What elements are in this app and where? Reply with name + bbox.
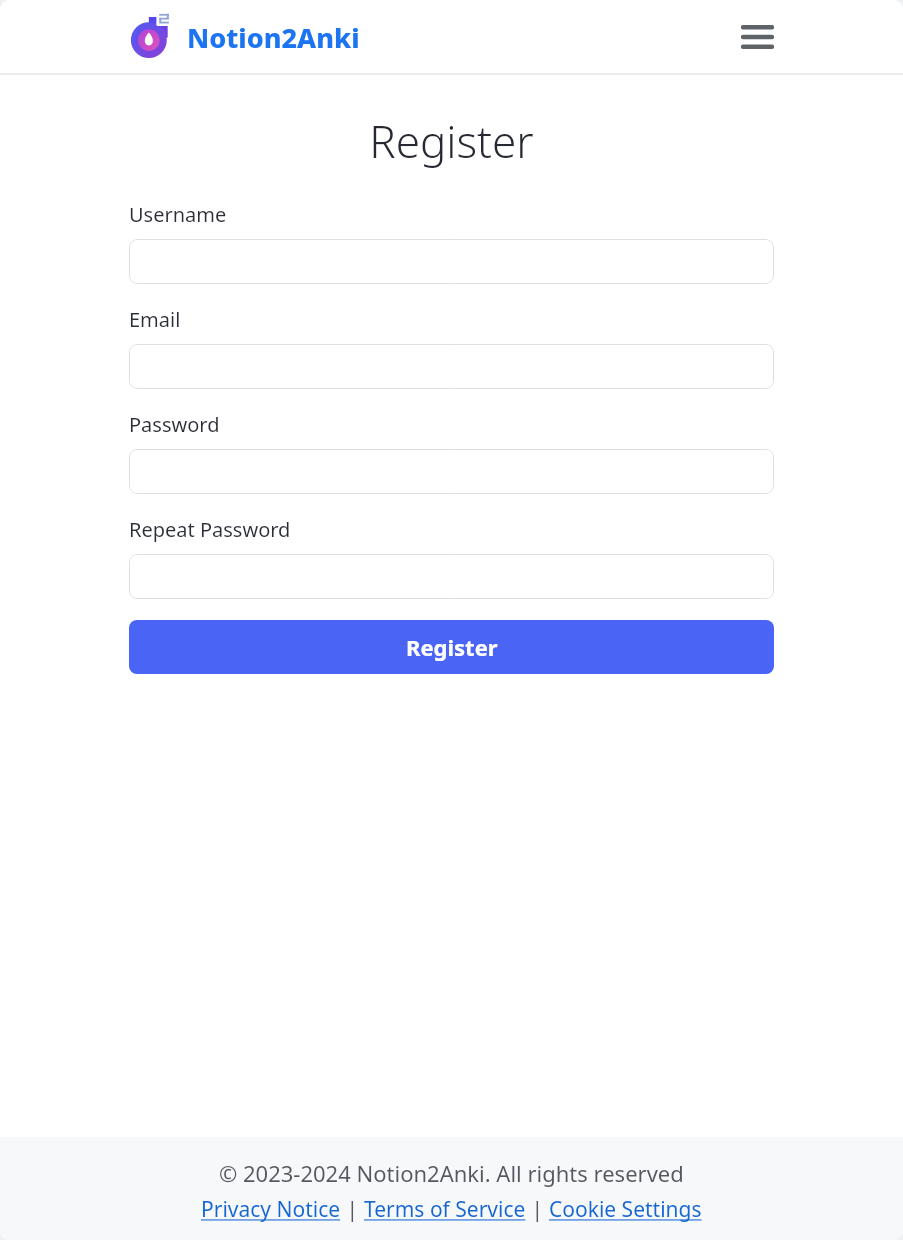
staticText: Cookie Settings xyxy=(549,1195,702,1224)
button[interactable]: Register xyxy=(129,620,774,674)
button[interactable]: Notion2Anki xyxy=(127,11,360,63)
button[interactable]: Terms of Service xyxy=(364,1195,526,1224)
button[interactable]: Cookie Settings xyxy=(549,1195,702,1224)
staticText: Notion2Anki xyxy=(187,19,360,56)
staticText: Email xyxy=(129,306,181,333)
button[interactable]: Username xyxy=(129,239,774,284)
staticText: Username xyxy=(129,201,227,228)
button[interactable]: Open menu xyxy=(733,13,781,61)
staticText: Terms of Service xyxy=(364,1195,526,1224)
button[interactable]: Password xyxy=(129,449,774,494)
button[interactable]: Repeat Password xyxy=(129,554,774,599)
button[interactable]: Privacy Notice xyxy=(201,1195,341,1224)
staticText: | xyxy=(341,1195,364,1224)
button[interactable]: Email xyxy=(129,344,774,389)
staticText: | xyxy=(526,1195,549,1224)
staticText: Privacy Notice xyxy=(201,1195,341,1224)
staticText: Register xyxy=(0,111,903,171)
staticText: Repeat Password xyxy=(129,516,291,543)
staticText: © 2023-2024 Notion2Anki. All rights rese… xyxy=(219,1158,684,1188)
staticText: Register xyxy=(406,632,498,662)
staticText: Password xyxy=(129,411,220,438)
